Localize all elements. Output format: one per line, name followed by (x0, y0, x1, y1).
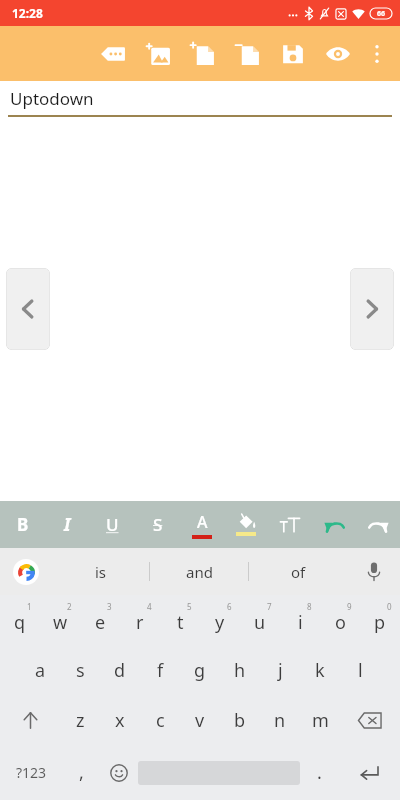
staticText: 7 (267, 601, 272, 612)
button[interactable]: c (140, 695, 180, 745)
button[interactable]: ?123 (0, 745, 62, 800)
staticText: d (114, 658, 126, 683)
staticText: U (106, 513, 119, 536)
button[interactable]: f (140, 645, 180, 695)
button[interactable]: More options (360, 26, 394, 81)
staticText: t (177, 610, 184, 635)
staticText: a (35, 658, 46, 683)
button[interactable]: y (200, 595, 240, 645)
button[interactable]: Redo (356, 501, 400, 548)
button[interactable]: d (100, 645, 140, 695)
staticText: r (136, 610, 144, 635)
button[interactable]: Remove page (225, 26, 270, 81)
button[interactable]: is (52, 548, 150, 595)
button[interactable]: o (320, 595, 360, 645)
staticText: o (335, 610, 346, 635)
staticText: 66 (377, 9, 386, 19)
button[interactable]: Uptodown (10, 81, 400, 115)
button[interactable]: t (160, 595, 200, 645)
staticText: 1 (27, 601, 32, 612)
staticText: B (17, 513, 29, 536)
button[interactable]: h (220, 645, 260, 695)
button[interactable]: i (280, 595, 320, 645)
button[interactable]: Space (138, 745, 300, 800)
button[interactable]: n (260, 695, 300, 745)
staticText: and (186, 562, 213, 582)
button[interactable]: u (240, 595, 280, 645)
button[interactable]: Enter (338, 745, 400, 800)
button[interactable]: and (150, 548, 249, 595)
button[interactable]: g (180, 645, 220, 695)
button[interactable]: l (340, 645, 380, 695)
button[interactable]: Text size (268, 501, 312, 548)
staticText: 2 (67, 601, 72, 612)
staticText: m (312, 708, 329, 733)
button[interactable]: Bold (0, 501, 45, 548)
staticText: e (95, 610, 106, 635)
button[interactable]: . (300, 745, 338, 800)
button[interactable]: r (120, 595, 160, 645)
button[interactable]: Next page (350, 268, 394, 350)
button[interactable]: Italic (45, 501, 90, 548)
staticText: ?123 (16, 763, 47, 782)
staticText: 6 (227, 601, 232, 612)
button[interactable]: Backspace (340, 695, 400, 745)
button[interactable]: q (0, 595, 40, 645)
button[interactable]: Text colour (180, 501, 224, 548)
staticText: n (274, 708, 286, 733)
button[interactable]: Voice input (348, 548, 400, 595)
button[interactable]: Emoji (100, 745, 138, 800)
button[interactable]: Tags (90, 26, 135, 81)
staticText: s (76, 658, 85, 683)
staticText: k (315, 658, 325, 683)
button[interactable]: e (80, 595, 120, 645)
button[interactable]: w (40, 595, 80, 645)
staticText: , (79, 760, 84, 785)
staticText: x (115, 708, 125, 733)
button[interactable]: a (20, 645, 60, 695)
button[interactable]: b (220, 695, 260, 745)
staticText: y (215, 610, 225, 635)
staticText: g (194, 658, 206, 683)
staticText: 5 (187, 601, 192, 612)
button[interactable]: Underline (90, 501, 135, 548)
staticText: . (317, 760, 322, 785)
staticText: f (157, 658, 164, 683)
staticText: q (14, 610, 26, 635)
button[interactable]: Add page (180, 26, 225, 81)
staticText: h (234, 658, 246, 683)
button[interactable]: z (60, 695, 100, 745)
staticText: j (278, 658, 283, 683)
button[interactable]: Google (0, 548, 52, 595)
staticText: l (358, 658, 363, 683)
button[interactable]: Strikethrough (135, 501, 180, 548)
button[interactable]: Save (270, 26, 315, 81)
staticText: is (95, 562, 107, 582)
staticText: v (195, 708, 205, 733)
staticText: 9 (347, 601, 352, 612)
button[interactable]: of (249, 548, 348, 595)
button[interactable]: Shift (0, 695, 60, 745)
button[interactable]: , (62, 745, 100, 800)
staticText: 12:28 (12, 5, 43, 21)
button[interactable]: x (100, 695, 140, 745)
staticText: u (254, 610, 266, 635)
button[interactable]: p (360, 595, 400, 645)
staticText: A (197, 511, 208, 533)
button[interactable]: Highlight colour (224, 501, 268, 548)
staticText: 8 (307, 601, 312, 612)
button[interactable]: m (300, 695, 340, 745)
staticText: S (153, 513, 163, 536)
button[interactable]: s (60, 645, 100, 695)
staticText: c (156, 708, 165, 733)
button[interactable]: k (300, 645, 340, 695)
button[interactable]: Add image (135, 26, 180, 81)
button[interactable]: Preview (315, 26, 360, 81)
button[interactable]: Previous page (6, 268, 50, 350)
staticText: 0 (387, 601, 392, 612)
staticText: Uptodown (10, 87, 94, 110)
button[interactable]: j (260, 645, 300, 695)
staticText: 4 (147, 601, 152, 612)
button[interactable]: v (180, 695, 220, 745)
button[interactable]: Undo (312, 501, 356, 548)
